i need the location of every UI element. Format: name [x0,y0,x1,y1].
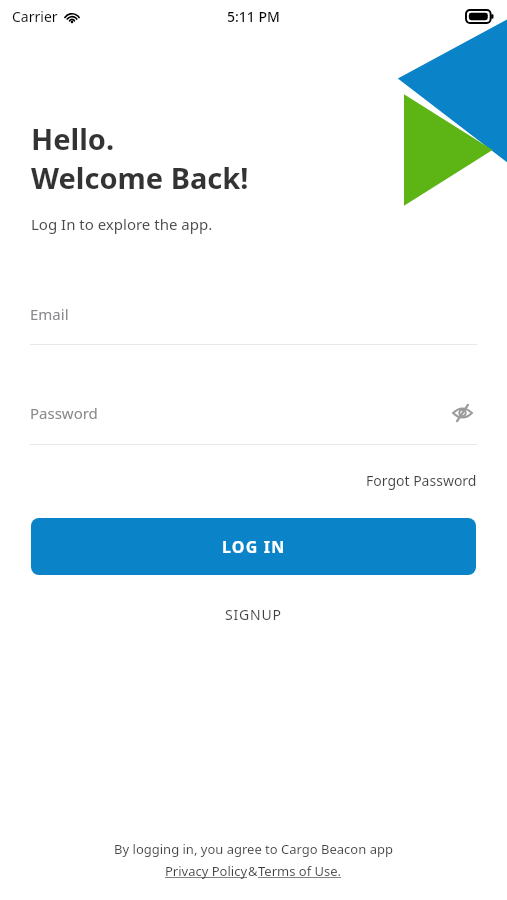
staticText: LOG IN [222,536,286,558]
button[interactable]: Forgot Password [366,471,477,490]
staticText: Carrier [12,7,58,26]
staticText: 5:11 PM [227,7,280,26]
staticText: Log In to explore the app. [31,214,213,234]
button[interactable]: Terms of Use. [258,862,342,880]
staticText: SIGNUP [225,605,282,624]
staticText: By logging in, you agree to Cargo Beacon… [114,840,393,858]
button[interactable]: Privacy Policy [165,862,248,880]
button[interactable]: Password [0,398,507,445]
button[interactable]: Show password [447,398,477,428]
staticText: Privacy Policy [165,862,248,880]
staticText: Password [30,403,447,423]
staticText: Terms of Use. [258,862,342,880]
button[interactable]: Email [0,304,507,345]
button[interactable]: SIGNUP [213,599,294,630]
staticText: Hello. [31,119,115,158]
staticText: Forgot Password [366,471,477,490]
staticText: Welcome Back! [31,158,249,197]
button[interactable]: LOG IN [31,518,476,575]
staticText: & [248,862,258,880]
staticText: Email [30,304,69,324]
